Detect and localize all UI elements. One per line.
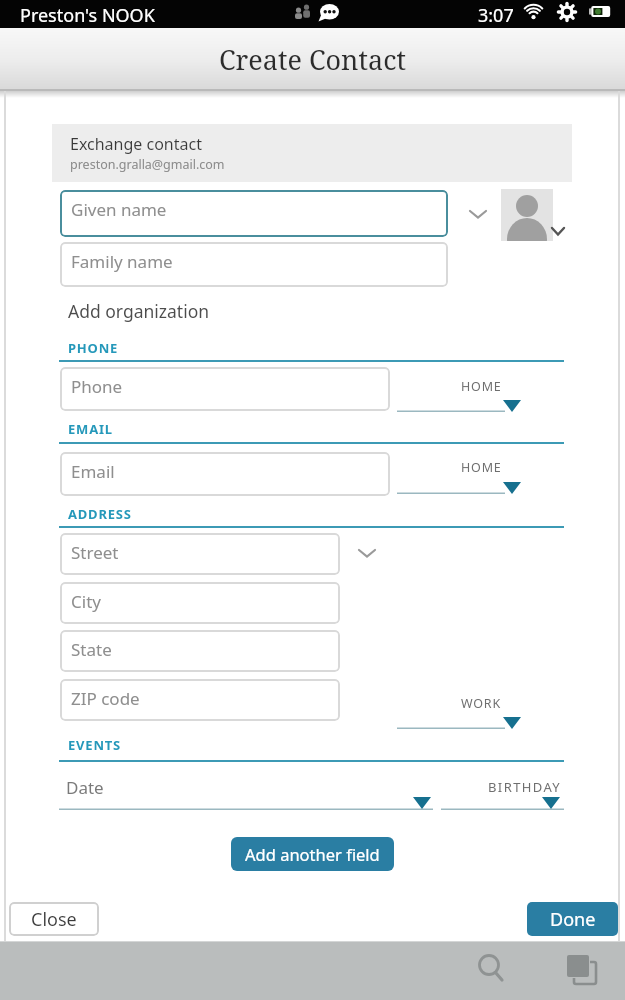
- staticText: Phone: [71, 375, 123, 398]
- button[interactable]: [564, 953, 600, 989]
- staticText: HOME: [461, 459, 502, 476]
- button[interactable]: City: [60, 582, 340, 624]
- button[interactable]: [475, 952, 507, 984]
- staticText: EVENTS: [68, 736, 122, 754]
- button[interactable]: Date: [66, 776, 104, 799]
- staticText: EMAIL: [68, 420, 113, 438]
- button[interactable]: Done: [527, 902, 618, 936]
- button[interactable]: Given name: [60, 190, 448, 237]
- button[interactable]: [441, 796, 564, 810]
- button[interactable]: [397, 715, 521, 729]
- button[interactable]: Close: [9, 902, 99, 936]
- staticText: ADDRESS: [68, 505, 132, 523]
- staticText: preston.gralla@gmail.com: [70, 156, 225, 173]
- button[interactable]: State: [60, 630, 340, 672]
- button[interactable]: Street: [60, 533, 340, 575]
- button[interactable]: Email: [60, 452, 390, 496]
- button[interactable]: [397, 480, 521, 494]
- staticText: City: [71, 590, 101, 613]
- staticText: Close: [31, 907, 77, 932]
- staticText: Family name: [71, 250, 173, 273]
- button[interactable]: ZIP code: [60, 679, 340, 721]
- staticText: Create Contact: [219, 41, 406, 78]
- button[interactable]: Family name: [60, 242, 448, 287]
- staticText: HOME: [461, 378, 502, 395]
- button[interactable]: Phone: [60, 367, 390, 411]
- staticText: Street: [71, 541, 119, 564]
- staticText: State: [71, 638, 112, 661]
- button[interactable]: Add another field: [231, 837, 394, 871]
- button[interactable]: Add organization: [68, 299, 210, 323]
- staticText: Done: [550, 907, 596, 932]
- staticText: WORK: [461, 695, 501, 712]
- button[interactable]: [397, 398, 521, 412]
- staticText: Given name: [71, 198, 167, 221]
- staticText: Exchange contact: [70, 133, 202, 155]
- staticText: 3:07: [478, 3, 514, 28]
- button[interactable]: [59, 796, 433, 810]
- staticText: Add another field: [245, 843, 380, 865]
- staticText: Email: [71, 460, 115, 483]
- staticText: BIRTHDAY: [488, 778, 562, 796]
- staticText: Preston's NOOK: [20, 3, 155, 28]
- staticText: PHONE: [68, 339, 119, 357]
- staticText: ZIP code: [71, 687, 140, 710]
- button[interactable]: [501, 189, 553, 241]
